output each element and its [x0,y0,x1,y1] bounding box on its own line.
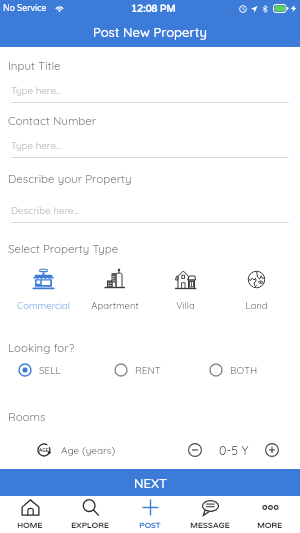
staticText: SELL [39,364,61,377]
button[interactable]: Apartment [79,267,150,311]
staticText: NEXT [134,475,167,491]
staticText: Post New Property [93,24,207,40]
staticText: POST [139,521,161,531]
button[interactable]: MESSAGE [180,496,240,533]
staticText: Input Title [8,58,61,72]
button[interactable]: MORE [240,496,300,533]
button[interactable]: NEXT [0,469,300,496]
staticText: Select Property Type [8,241,119,255]
staticText: Describe here... [11,204,79,216]
staticText: MORE [257,521,283,531]
staticText: Contact Number [8,113,97,127]
staticText: 0-5 Y [219,442,249,458]
staticText: Apartment [91,299,139,311]
button[interactable]: Decrease age [188,443,202,457]
button[interactable]: Commercial [8,267,79,311]
staticText: AGE [39,447,49,453]
button[interactable]: RENT [114,363,161,377]
staticText: Land [245,299,268,311]
staticText: RENT [135,364,161,377]
staticText: 12:08 PM [131,3,176,14]
button[interactable]: SELL [18,363,61,377]
staticText: Villa [176,299,195,311]
staticText: MESSAGE [190,521,230,531]
button[interactable]: HOME [0,496,60,533]
staticText: Type here... [11,139,62,151]
staticText: Rooms [8,409,46,423]
button[interactable]: Land [221,267,292,311]
button[interactable]: BOTH [209,363,258,377]
staticText: Type here... [11,84,62,96]
button[interactable]: Increase age [265,443,279,457]
button[interactable]: EXPLORE [60,496,120,533]
staticText: BOTH [230,364,258,377]
staticText: Looking for? [8,340,75,354]
button[interactable]: POST [120,496,180,533]
staticText: Describe your Property [8,171,132,185]
staticText: HOME [17,521,43,531]
staticText: No Service [3,3,47,13]
button[interactable]: Villa [150,267,221,311]
staticText: EXPLORE [71,521,109,531]
staticText: Age (years) [61,444,116,457]
staticText: Commercial [17,299,70,311]
